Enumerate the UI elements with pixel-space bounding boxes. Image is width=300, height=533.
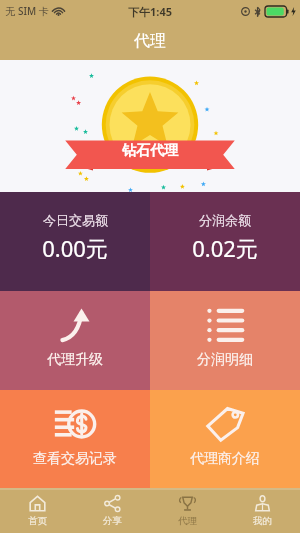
staticText: 查看交易记录 xyxy=(33,450,117,468)
staticText: 代理 xyxy=(134,31,166,51)
staticText: 0.00元 xyxy=(42,233,108,263)
button[interactable]: 分享 xyxy=(75,490,150,533)
staticText: 代理商介绍 xyxy=(190,450,260,468)
button[interactable]: 我的 xyxy=(225,490,300,533)
button[interactable]: 代理升级 xyxy=(0,291,150,390)
button[interactable]: 分润明细 xyxy=(150,291,300,390)
button[interactable]: 首页 xyxy=(0,490,75,533)
staticText: 钻石代理 xyxy=(122,142,178,160)
staticText: 首页 xyxy=(28,515,47,527)
staticText: 我的 xyxy=(253,515,272,527)
staticText: 分享 xyxy=(103,515,122,527)
button[interactable]: 今日交易额 xyxy=(0,192,150,291)
staticText: 代理升级 xyxy=(47,351,103,369)
staticText: 无 SIM 卡 xyxy=(5,4,49,18)
staticText: 今日交易额 xyxy=(43,212,108,228)
button[interactable]: 查看交易记录 xyxy=(0,390,150,488)
staticText: 下午1:45 xyxy=(128,4,172,19)
button[interactable]: 代理商介绍 xyxy=(150,390,300,488)
button[interactable]: 分润余额 xyxy=(150,192,300,291)
staticText: 分润余额 xyxy=(199,212,251,228)
staticText: 代理 xyxy=(178,515,197,527)
staticText: 0.02元 xyxy=(192,233,258,263)
staticText: 分润明细 xyxy=(197,351,253,369)
button[interactable]: 代理 xyxy=(150,490,225,533)
